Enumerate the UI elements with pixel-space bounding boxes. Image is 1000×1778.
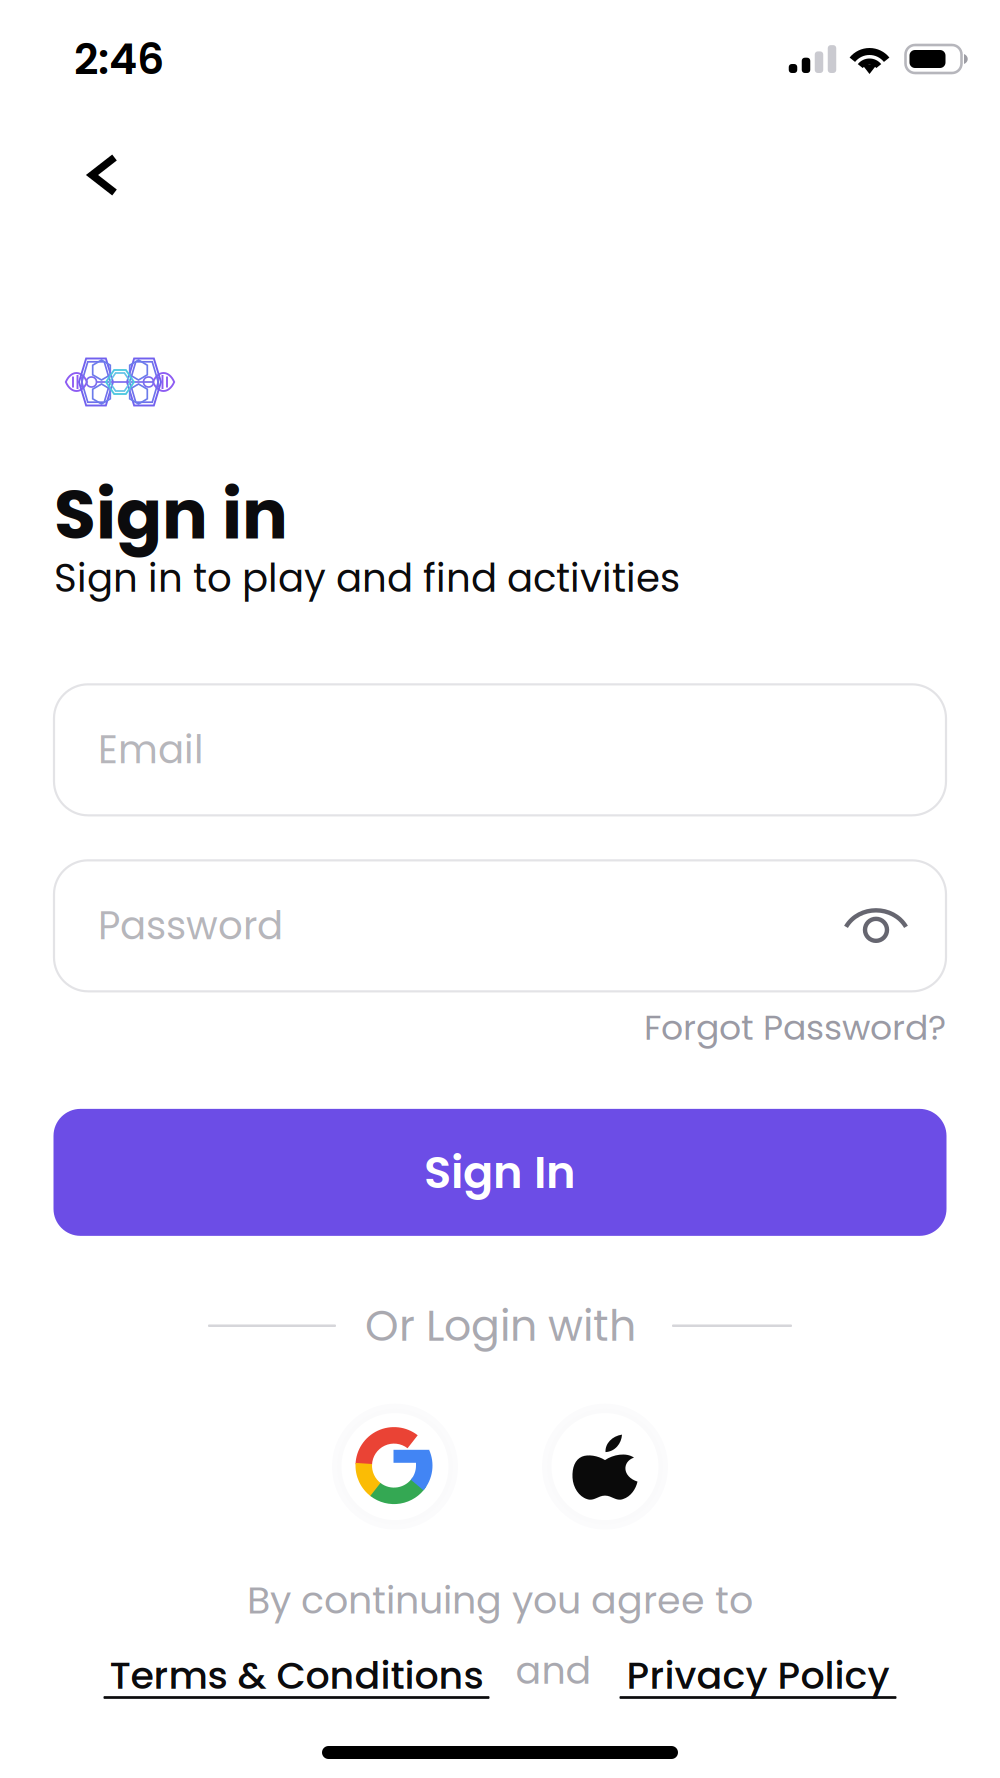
staticText: Or Login with <box>365 1296 636 1356</box>
staticText: Forgot Password? <box>644 1003 946 1052</box>
staticText: Email <box>98 723 204 777</box>
staticText: and <box>515 1644 591 1697</box>
staticText: Password <box>98 899 283 953</box>
button[interactable]: Terms & Conditions <box>103 1649 489 1699</box>
staticText: Sign in <box>54 467 288 562</box>
staticText: Privacy Policy <box>626 1649 889 1702</box>
button[interactable]: Sign in with Google <box>319 1402 471 1532</box>
staticText: Terms & Conditions <box>109 1649 483 1702</box>
button[interactable]: Sign In <box>53 1109 946 1236</box>
button[interactable]: Back <box>88 149 154 201</box>
staticText: By continuing you agree to <box>247 1574 753 1627</box>
staticText: Sign In <box>424 1141 576 1204</box>
staticText: Sign in to play and find activities <box>54 551 680 605</box>
button[interactable]: Password <box>54 860 946 991</box>
button[interactable]: Privacy Policy <box>619 1649 896 1699</box>
button[interactable]: Sign in with Apple <box>529 1402 681 1532</box>
button[interactable]: Email <box>54 684 946 815</box>
staticText: 2:46 <box>74 29 164 89</box>
button[interactable]: Forgot Password? <box>644 1003 946 1052</box>
